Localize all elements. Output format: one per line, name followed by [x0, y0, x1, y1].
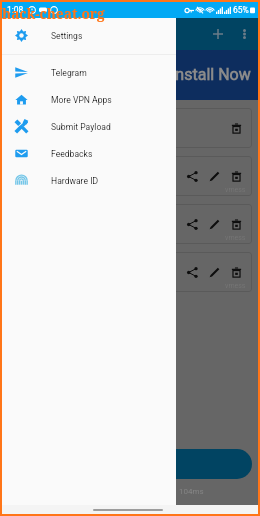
staticText: 1:08: [7, 5, 24, 15]
staticText: Submit Payload: [51, 122, 111, 132]
button[interactable]: Delete: [225, 213, 247, 235]
staticText: Hardware ID: [51, 176, 99, 186]
staticText: Telegram: [51, 68, 87, 78]
button[interactable]: Delete: [225, 117, 247, 139]
staticText: vmess: [225, 234, 246, 242]
button[interactable]: Delete: [8, 108, 252, 148]
staticText: 65%: [233, 5, 249, 15]
button[interactable]: Feedbacks: [2, 140, 176, 167]
staticText: Install Now: [171, 65, 251, 84]
button[interactable]: Edit: [203, 213, 225, 235]
button[interactable]: Share: [181, 213, 203, 235]
button[interactable]: More VPN Apps: [2, 86, 176, 113]
staticText: vmess: [225, 186, 246, 194]
button[interactable]: Install Now: [2, 50, 258, 100]
button[interactable]: Telegram: [2, 59, 176, 86]
staticText: Settings: [51, 31, 83, 41]
button[interactable]: Delete: [225, 165, 247, 187]
staticText: vmess: [225, 282, 246, 290]
button[interactable]: Delete: [225, 261, 247, 283]
button[interactable]: Share: [8, 156, 252, 196]
button[interactable]: Share: [181, 165, 203, 187]
button[interactable]: [8, 449, 252, 479]
staticText: More VPN Apps: [51, 95, 112, 105]
staticText: 104ms: [179, 487, 204, 496]
button[interactable]: More options: [230, 20, 258, 48]
button[interactable]: Submit Payload: [2, 113, 176, 140]
staticText: hack-cheat.org: [2, 4, 105, 23]
button[interactable]: Share: [8, 204, 252, 244]
staticText: Feedbacks: [51, 149, 93, 159]
button[interactable]: Edit: [203, 165, 225, 187]
button[interactable]: Share: [181, 261, 203, 283]
button[interactable]: Hardware ID: [2, 167, 176, 194]
button[interactable]: Edit: [203, 261, 225, 283]
button[interactable]: Add: [206, 20, 230, 48]
button[interactable]: Share: [8, 252, 252, 292]
button[interactable]: Settings: [2, 22, 176, 49]
